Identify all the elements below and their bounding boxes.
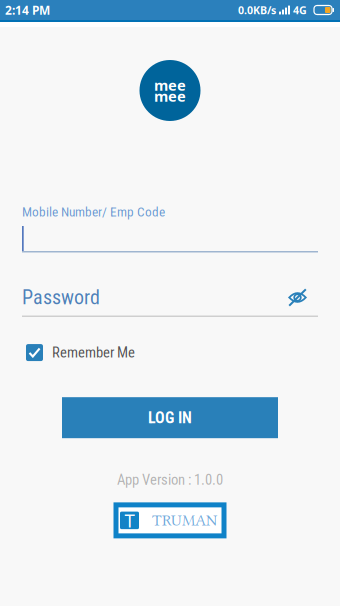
staticText: 0.0KB/s <box>238 3 276 17</box>
staticText: T <box>124 508 134 533</box>
staticText: LOG IN <box>148 408 192 427</box>
button[interactable]: Remember Me <box>26 344 135 361</box>
staticText: App Version : 1.0.0 <box>117 471 223 488</box>
staticText: Remember Me <box>52 344 135 361</box>
staticText: Mobile Number/ Emp Code <box>22 204 165 220</box>
staticText: Password <box>22 286 100 309</box>
button[interactable]: Show password <box>288 288 307 306</box>
staticText: TRUMAN <box>152 511 217 529</box>
staticText: 2:14 PM <box>5 2 50 18</box>
staticText: mee <box>154 86 186 106</box>
staticText: mee <box>154 75 186 95</box>
staticText: 4G <box>293 3 307 17</box>
button[interactable]: LOG IN <box>62 397 278 438</box>
